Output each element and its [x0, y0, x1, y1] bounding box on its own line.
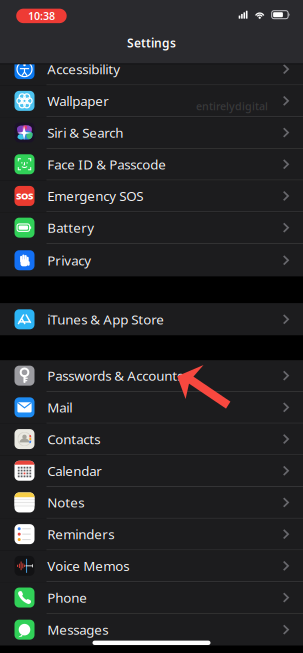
button[interactable]: Wallpaper: [0, 85, 303, 117]
staticText: Siri & Search: [47, 124, 123, 141]
button[interactable]: Reminders: [0, 519, 303, 550]
staticText: Settings: [127, 35, 176, 51]
button[interactable]: Battery: [0, 212, 303, 244]
staticText: Mail: [47, 398, 72, 416]
staticText: Voice Memos: [47, 557, 129, 575]
staticText: 10:38: [28, 9, 55, 23]
button[interactable]: Notes: [0, 487, 303, 519]
button[interactable]: Privacy: [0, 244, 303, 277]
button[interactable]: Accessibility: [0, 54, 303, 85]
button[interactable]: iTunes & App Store: [0, 303, 303, 335]
button[interactable]: Face ID & Passcode: [0, 149, 303, 180]
staticText: Face ID & Passcode: [47, 155, 166, 173]
staticText: iTunes & App Store: [47, 310, 164, 328]
staticText: Privacy: [47, 251, 91, 269]
button[interactable]: Calendar: [0, 455, 303, 487]
button[interactable]: Voice Memos: [0, 550, 303, 582]
button[interactable]: Passwords & Accounts: [0, 360, 303, 392]
staticText: Reminders: [47, 525, 114, 543]
staticText: Phone: [47, 589, 87, 606]
staticText: Messages: [47, 621, 108, 638]
staticText: SOS: [16, 190, 33, 202]
staticText: Wallpaper: [47, 92, 109, 110]
staticText: Emergency SOS: [47, 187, 143, 205]
staticText: Accessibility: [47, 60, 120, 78]
button[interactable]: Contacts: [0, 424, 303, 455]
button[interactable]: Siri & Search: [0, 117, 303, 149]
staticText: entirelydigital: [196, 99, 268, 113]
button[interactable]: Messages: [0, 614, 303, 645]
staticText: Calendar: [47, 462, 102, 480]
staticText: Battery: [47, 219, 94, 236]
button[interactable]: Phone: [0, 582, 303, 614]
staticText: Notes: [47, 494, 84, 511]
button[interactable]: Mail: [0, 392, 303, 424]
button[interactable]: SOS: [0, 180, 303, 212]
staticText: Passwords & Accounts: [47, 367, 183, 384]
staticText: Contacts: [47, 430, 100, 448]
